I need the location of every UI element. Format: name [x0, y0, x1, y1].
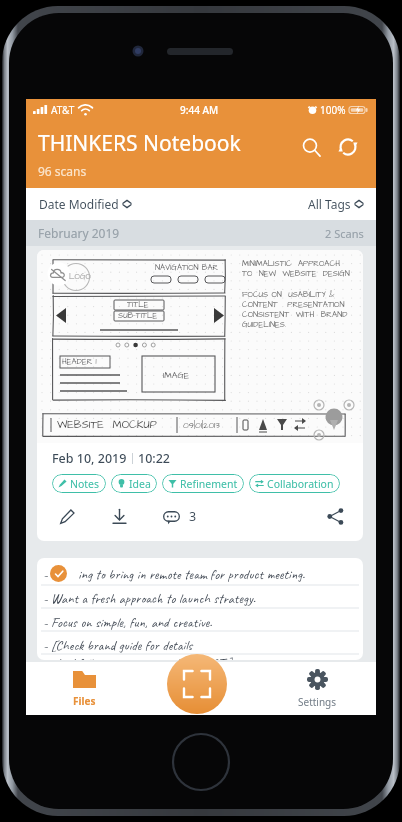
button[interactable]: 3 [156, 501, 197, 531]
staticText: February 2019 [38, 225, 120, 241]
button[interactable]: LOGO [37, 250, 363, 541]
button[interactable]: Date Modified [39, 196, 131, 212]
button[interactable]: Refinement [162, 474, 244, 493]
staticText: Idea [129, 477, 151, 491]
staticText: AT&T [51, 103, 75, 117]
staticText: 09|01|2013 [183, 419, 220, 432]
button[interactable]: - ing to bring in remote team for produc… [37, 558, 363, 660]
button[interactable]: Edit [52, 501, 82, 531]
button[interactable]: Files [26, 662, 142, 715]
staticText: WEBSITE MOCKUP [57, 417, 157, 432]
staticText: - Need full executive approval of SWOT ] [43, 655, 233, 660]
button[interactable]: Share [320, 501, 350, 531]
staticText: Settings [298, 695, 337, 709]
staticText: - ing to bring in remote team for produc… [43, 566, 305, 584]
button[interactable]: Download [104, 501, 134, 531]
staticText: 3 [189, 508, 197, 525]
staticText: FOCUS ON USABILITY & [242, 289, 335, 300]
staticText: TO NEW WEBSITE DESIGN [242, 268, 350, 279]
staticText: - [Check brand guide for details [43, 637, 193, 655]
staticText: - Focus on simple, fun, and creative. [43, 614, 213, 632]
staticText: 10:22 [138, 450, 171, 467]
button[interactable]: Settings [259, 662, 376, 715]
staticText: Date Modified [39, 196, 119, 212]
staticText: - Want a fresh approach to launch strate… [43, 590, 256, 608]
button[interactable]: All Tags [308, 196, 363, 212]
button[interactable]: Collaboration [249, 474, 340, 493]
staticText: NAVIGATION BAR [155, 262, 219, 273]
staticText: Collaboration [267, 477, 334, 491]
staticText: 9:44 AM [180, 103, 219, 117]
staticText: LOGO [69, 271, 91, 282]
staticText: THINKERS Notebook [38, 129, 241, 158]
staticText: 100% [320, 103, 346, 117]
staticText: Files [73, 694, 96, 708]
staticText: CONTENT PRESENTATION [242, 299, 345, 310]
staticText: GUIDELINES. [242, 319, 286, 330]
staticText: MINIMALISTIC APPROACH [242, 258, 340, 269]
staticText: 2 Scans [325, 226, 364, 241]
staticText: Feb 10, 2019 [52, 450, 127, 467]
staticText: Refinement [180, 477, 238, 491]
button[interactable]: Idea [111, 474, 157, 493]
staticText: 96 scans [38, 163, 87, 179]
staticText: HEADER 1 [62, 356, 97, 367]
staticText: TITLE [127, 299, 149, 310]
staticText: SUB-TITLE [118, 310, 158, 321]
button[interactable]: Notes [52, 474, 106, 493]
staticText: All Tags [308, 196, 351, 212]
staticText: CONSISTENT WITH BRAND [242, 309, 348, 320]
staticText: Notes [70, 477, 100, 491]
button[interactable]: Sync [331, 130, 365, 164]
button[interactable]: Scan [167, 654, 227, 714]
button[interactable]: Search [294, 130, 328, 164]
staticText: IMAGE [163, 369, 190, 382]
